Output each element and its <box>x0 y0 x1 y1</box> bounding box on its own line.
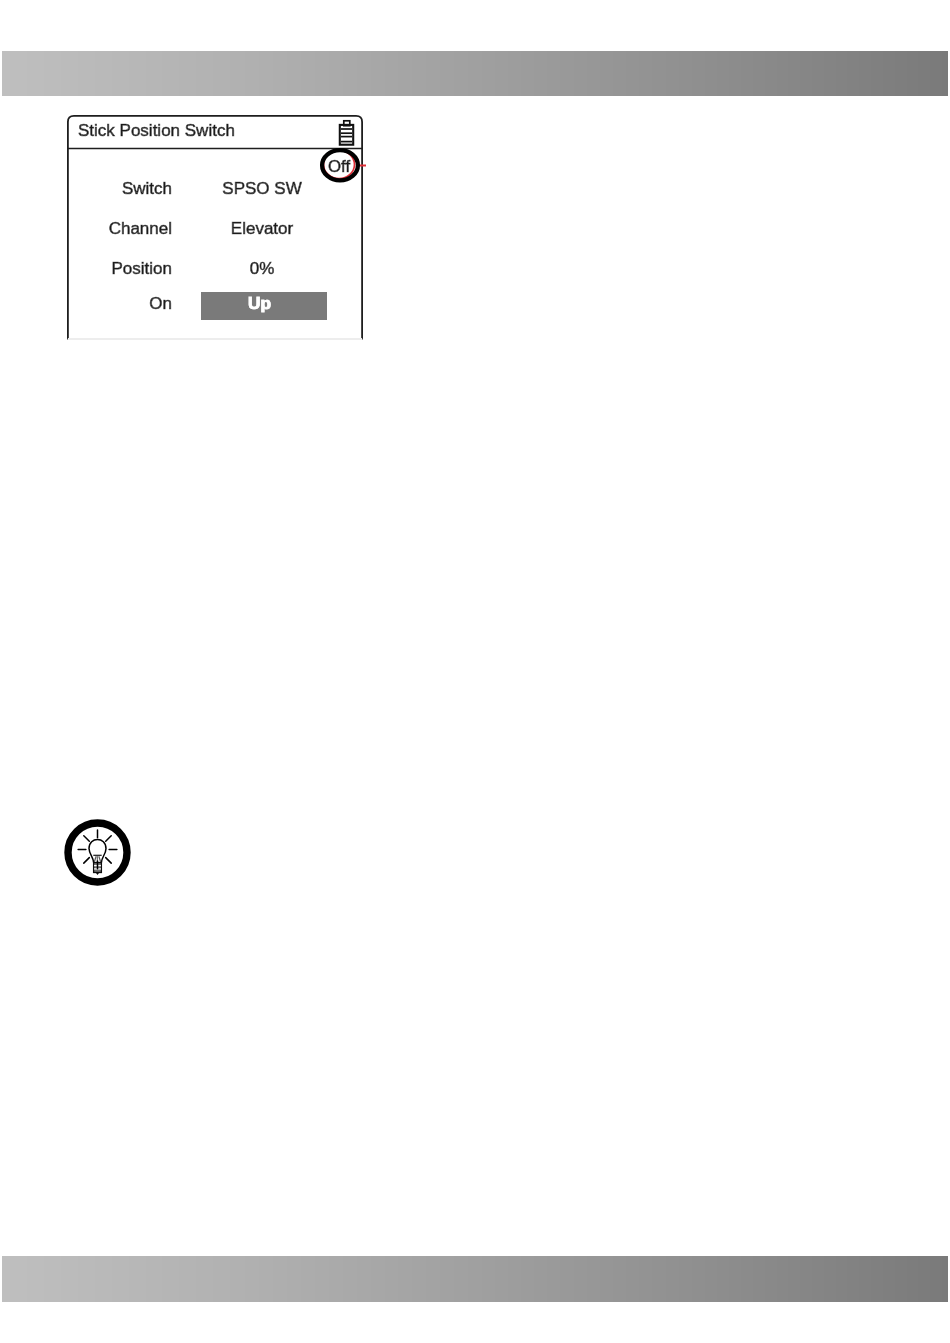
staticText: On <box>67 294 172 313</box>
staticText: Switch <box>67 179 172 198</box>
staticText: Off <box>328 157 358 176</box>
button[interactable]: Tip <box>64 819 131 886</box>
staticText: Stick Position Switch <box>78 121 278 140</box>
staticText: Off <box>328 157 358 176</box>
staticText: Up <box>248 293 288 312</box>
staticText: Stick Position Switch <box>78 121 278 140</box>
staticText: On <box>67 294 172 313</box>
staticText: Position <box>67 259 172 278</box>
staticText: 0% <box>199 259 325 278</box>
staticText: Position <box>67 259 172 278</box>
staticText: SPSO SW <box>199 179 325 198</box>
button[interactable]: Battery level <box>335 116 361 150</box>
staticText: Up <box>248 293 288 312</box>
button[interactable]: Channel <box>67 219 363 243</box>
staticText: Channel <box>67 219 172 238</box>
staticText: SPSO SW <box>199 179 325 198</box>
staticText: Elevator <box>199 219 325 238</box>
button[interactable]: Position <box>67 259 363 283</box>
button[interactable]: Up <box>201 292 327 320</box>
staticText: 0% <box>199 259 325 278</box>
staticText: Switch <box>67 179 172 198</box>
staticText: Elevator <box>199 219 325 238</box>
button[interactable]: Switch <box>67 179 363 203</box>
staticText: Channel <box>67 219 172 238</box>
button[interactable]: Stick Position Switch <box>67 115 363 340</box>
